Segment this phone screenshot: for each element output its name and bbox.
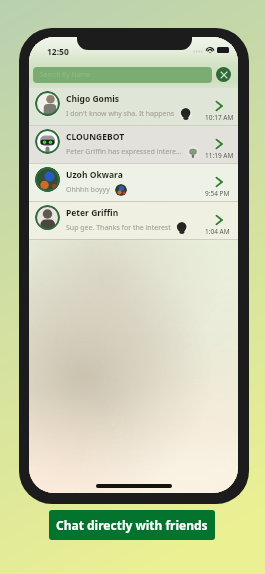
staticText: Uzoh Okwara — [66, 169, 123, 181]
button[interactable]: Peter Griffin — [29, 202, 238, 239]
button[interactable]: Clear search — [216, 67, 231, 82]
staticText: CLOUNGEBOT — [66, 131, 125, 143]
staticText: Peter Griffin — [66, 207, 119, 219]
staticText: Search By Name — [40, 70, 90, 79]
button[interactable]: Search By Name — [33, 67, 212, 83]
staticText: 11:19 AM — [205, 151, 234, 160]
button[interactable]: Chat directly with friends — [49, 510, 215, 540]
staticText: 10:17 AM — [205, 113, 234, 122]
staticText: Chigo Gomis — [66, 93, 119, 105]
staticText: Chat directly with friends — [56, 517, 208, 533]
staticText: 9:54 PM — [205, 189, 230, 198]
staticText: Peter Griffin has expressed intere... — [66, 147, 182, 157]
button[interactable]: CLOUNGEBOT — [29, 126, 238, 163]
staticText: Ohhhh boyyy — [66, 185, 110, 195]
staticText: 1:04 AM — [205, 227, 230, 236]
staticText: 12:50 — [47, 46, 69, 58]
button[interactable]: Uzoh Okwara — [29, 164, 238, 201]
staticText: Sup gee. Thanks for the interest — [66, 223, 171, 233]
staticText: I don't know why sha. It happens — [66, 109, 175, 119]
button[interactable]: Chigo Gomis — [29, 88, 238, 125]
